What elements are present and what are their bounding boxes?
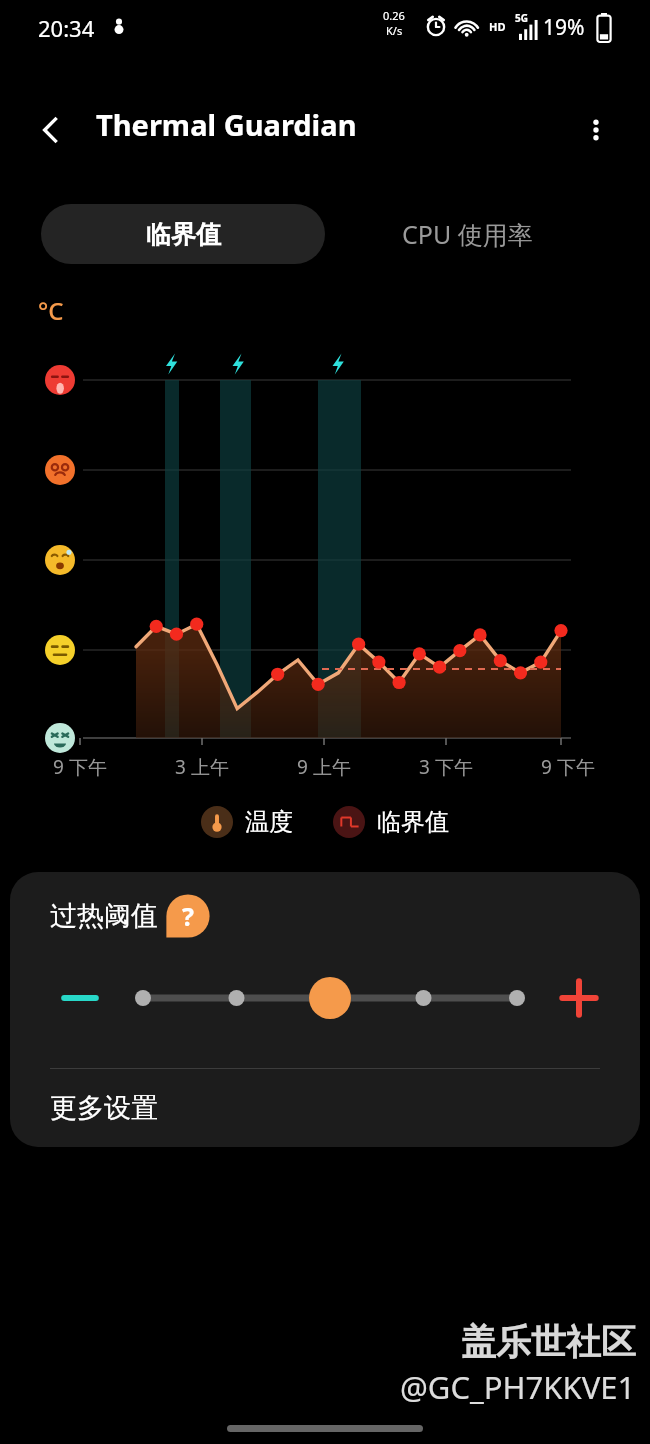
staticText: 临界值 xyxy=(146,219,221,250)
staticText: 9 上午 xyxy=(297,754,351,780)
staticText: K/s xyxy=(386,23,403,38)
button[interactable]: Help xyxy=(164,892,212,940)
staticText: 5G xyxy=(515,11,528,25)
button[interactable]: More options xyxy=(571,105,621,155)
button[interactable]: Decrease threshold xyxy=(48,966,112,1030)
staticText: HD xyxy=(489,19,506,34)
staticText: ? xyxy=(182,899,194,933)
button[interactable]: Back xyxy=(26,105,76,155)
button[interactable]: 温度 xyxy=(201,806,293,838)
staticText: Thermal Guardian xyxy=(96,105,357,144)
staticText: 更多设置 xyxy=(50,1091,158,1125)
staticText: 9 下午 xyxy=(53,754,107,780)
staticText: 3 上午 xyxy=(175,754,229,780)
button[interactable]: Increase threshold xyxy=(547,966,611,1030)
staticText: 温度 xyxy=(245,807,293,837)
staticText: 20:34 xyxy=(38,13,95,43)
staticText: 19% xyxy=(543,13,585,42)
button[interactable]: 临界值 xyxy=(333,806,449,838)
staticText: 9 下午 xyxy=(541,754,595,780)
staticText: 0.26 xyxy=(383,8,405,23)
button[interactable]: 更多设置 xyxy=(10,1072,640,1144)
staticText: 过热阈值 xyxy=(50,899,158,933)
staticText: CPU 使用率 xyxy=(402,217,533,251)
staticText: 3 下午 xyxy=(419,754,473,780)
button[interactable]: 临界值 xyxy=(41,204,325,264)
staticText: °C xyxy=(38,294,64,327)
button[interactable]: Threshold slider xyxy=(118,966,542,1030)
staticText: 盖乐世社区 xyxy=(461,1320,636,1364)
staticText: @GC_PH7KKVE1 xyxy=(400,1366,636,1408)
staticText: 临界值 xyxy=(377,807,449,837)
button[interactable]: CPU 使用率 xyxy=(325,204,609,264)
